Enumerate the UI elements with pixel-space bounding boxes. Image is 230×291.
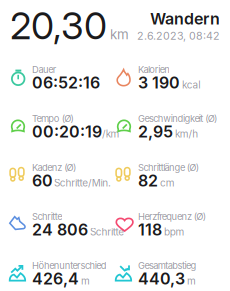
staticText: 24 806 [32,220,88,239]
staticText: 440,3 [138,269,185,288]
staticText: m [81,275,90,287]
staticText: cm [160,177,175,189]
staticText: m [187,275,196,287]
staticText: Gesamtabstieg [138,260,196,271]
staticText: 20,30 [10,3,107,48]
staticText: 06:52:16 [32,73,100,92]
staticText: Wandern [150,9,220,28]
staticText: 82 [138,171,158,190]
staticText: 3 190 [138,73,180,92]
staticText: Herzfrequenz (Ø) [138,211,206,222]
staticText: 118 [138,220,162,239]
staticText: Dauer [32,64,57,75]
staticText: Tempo (Ø) [32,113,74,124]
staticText: Schritte/Min. [54,177,111,189]
staticText: Kadenz (Ø) [32,162,76,173]
staticText: Geschwindigkeit (Ø) [138,113,217,124]
staticText: 426,4 [32,269,79,288]
staticText: 60 [32,171,53,190]
staticText: Schritte [32,211,62,222]
staticText: /km [102,128,119,140]
staticText: 2.6.2023, 08:42 [137,29,220,42]
staticText: 00:20:19 [32,122,102,141]
staticText: bpm [164,226,184,238]
staticText: Kalorien [138,64,170,75]
staticText: Schritte [90,226,124,238]
staticText: kcal [182,79,200,91]
staticText: km/h [175,128,198,140]
staticText: Höhenunterschied [32,260,107,271]
staticText: 2,95 [138,122,173,141]
staticText: Schrittlänge (Ø) [138,162,199,173]
staticText: km [110,26,129,42]
